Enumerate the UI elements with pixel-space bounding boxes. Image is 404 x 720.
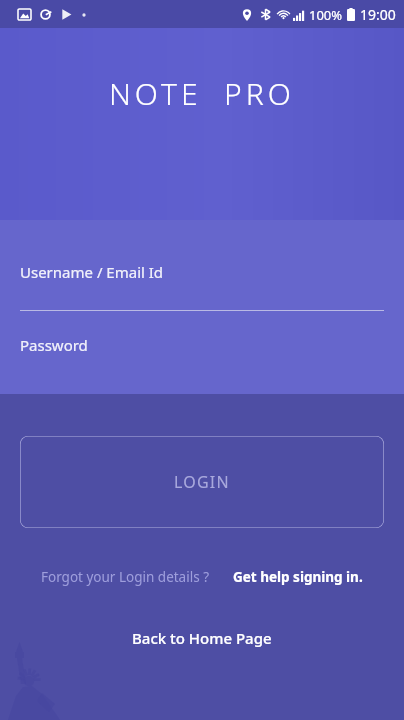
staticText: Get help signing in. [233, 568, 363, 586]
staticText: Username / Email Id [20, 262, 164, 282]
button[interactable]: Back to Home Page [120, 622, 284, 654]
staticText: LOGIN [174, 471, 230, 493]
button[interactable]: LOGIN [20, 436, 384, 528]
staticText: NOTE [109, 73, 202, 114]
staticText: PRO [224, 73, 295, 114]
button[interactable]: Get help signing in. [229, 564, 367, 590]
staticText: 100% [309, 6, 343, 24]
button[interactable]: Forgot your Login details ? [37, 564, 213, 590]
staticText: Back to Home Page [132, 628, 272, 648]
button[interactable]: Password [0, 312, 404, 394]
staticText: 19:00 [360, 5, 396, 24]
staticText: Password [20, 335, 88, 355]
staticText: Forgot your Login details ? [41, 568, 209, 586]
button[interactable]: Username / Email Id [0, 220, 404, 312]
